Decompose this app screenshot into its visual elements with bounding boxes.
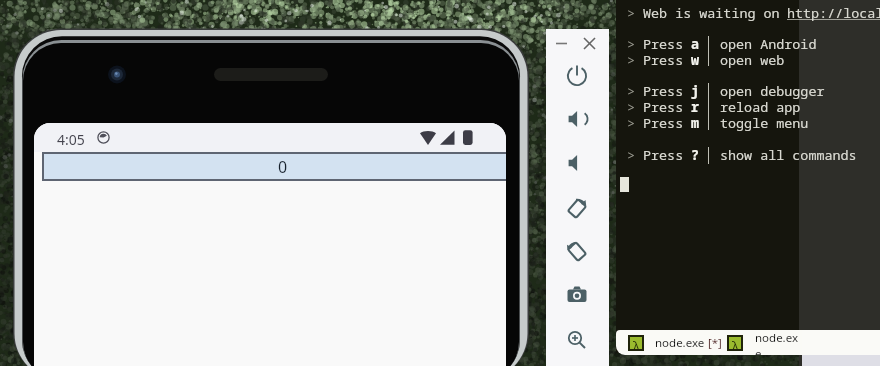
staticText: [*] <box>708 335 722 351</box>
button[interactable]: Minimize <box>552 34 570 52</box>
button[interactable]: Volume up <box>562 104 592 134</box>
staticText: λ <box>732 337 739 349</box>
button[interactable]: Close <box>580 34 598 52</box>
button[interactable]: Power <box>562 61 592 91</box>
button[interactable]: Volume down <box>562 148 592 178</box>
staticText: Press <box>643 98 684 116</box>
staticText: λ <box>633 337 640 349</box>
button[interactable]: Rotate right <box>562 236 592 266</box>
staticText: > <box>627 114 636 132</box>
staticText: j <box>691 82 700 100</box>
staticText: w <box>691 51 700 69</box>
button[interactable]: Screenshot <box>562 280 592 310</box>
staticText: > <box>627 146 636 164</box>
staticText: open debugger <box>720 82 825 100</box>
staticText: node.exe <box>755 330 804 355</box>
staticText: m <box>691 114 700 132</box>
staticText: toggle menu <box>720 114 809 132</box>
staticText: > <box>627 98 636 116</box>
staticText: show all commands <box>720 146 857 164</box>
staticText: a <box>691 35 700 53</box>
button[interactable]: Rotate left <box>562 193 592 223</box>
staticText: Press <box>643 35 684 53</box>
staticText: Press <box>643 51 684 69</box>
staticText: > <box>627 4 636 22</box>
staticText: > <box>627 35 636 53</box>
staticText: > <box>627 82 636 100</box>
button[interactable]: Zoom <box>562 325 592 355</box>
staticText: open Android <box>720 35 817 53</box>
staticText: 0 <box>278 156 288 178</box>
staticText: 4:05 <box>57 130 85 149</box>
button[interactable]: λ <box>724 330 804 355</box>
staticText: open web <box>720 51 785 69</box>
staticText: Web is waiting on <box>643 4 780 22</box>
staticText: http://local <box>787 4 880 22</box>
staticText: > <box>627 51 636 69</box>
staticText: Press <box>643 82 684 100</box>
button[interactable]: 0 <box>44 154 506 179</box>
staticText: node.exe <box>655 335 708 351</box>
staticText: Press <box>643 146 684 164</box>
button[interactable]: λ <box>622 330 722 355</box>
staticText: r <box>691 98 700 116</box>
staticText: reload app <box>720 98 801 116</box>
staticText: Press <box>643 114 684 132</box>
staticText: ? <box>691 146 700 164</box>
